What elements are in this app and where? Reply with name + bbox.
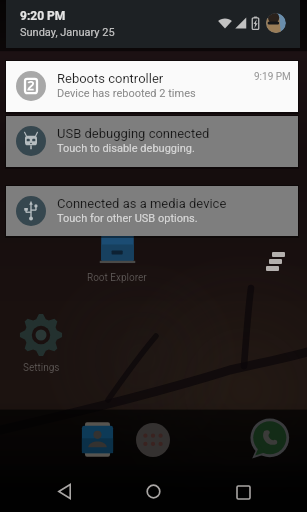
staticText: Connected as a media device (57, 196, 227, 211)
staticText: Settings (23, 362, 60, 374)
button[interactable]: Root Explorer (87, 229, 167, 284)
button[interactable]: Home (135, 473, 171, 509)
staticText: Sunday, January 25 (20, 26, 115, 39)
button[interactable]: WhatsApp (247, 418, 290, 461)
button[interactable]: Contacts (78, 420, 117, 459)
button[interactable]: Recents (225, 474, 261, 510)
button[interactable]: Apps (136, 423, 170, 457)
staticText: Device has rebooted 2 times (57, 87, 196, 100)
button[interactable]: Stack widget (265, 249, 287, 271)
staticText: Reboots controller (57, 71, 164, 86)
button[interactable]: Back (46, 473, 82, 509)
staticText: USB debugging connected (57, 126, 210, 141)
staticText: Root Explorer (87, 272, 147, 284)
staticText: Touch to disable debugging. (57, 142, 195, 155)
button[interactable]: User profile (266, 13, 286, 33)
button[interactable]: USB debugging connected (6, 116, 298, 167)
staticText: 9:19 PM (254, 71, 291, 83)
button[interactable]: Connected as a media device (6, 186, 298, 236)
button[interactable]: Settings (18, 312, 64, 374)
button[interactable]: Reboots controller (6, 61, 298, 112)
staticText: Touch for other USB options. (57, 212, 198, 225)
staticText: 9:20 PM (20, 9, 66, 23)
